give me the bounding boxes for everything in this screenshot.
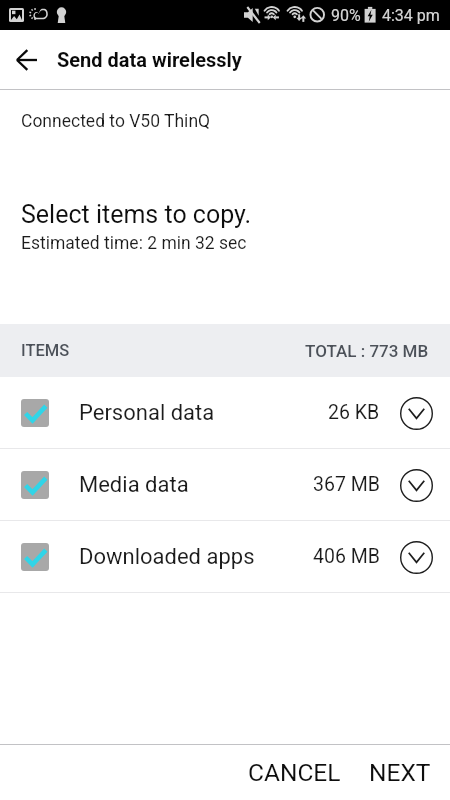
staticText: Personal data — [79, 400, 215, 426]
staticText: ITEMS — [21, 341, 70, 360]
staticText: Media data — [79, 472, 189, 498]
button[interactable]: Expand Personal data — [399, 396, 433, 430]
staticText: 90% — [331, 6, 361, 25]
staticText: Estimated time: 2 min 32 sec — [21, 233, 247, 254]
staticText: Select items to copy. — [21, 200, 252, 229]
button[interactable]: Expand Downloaded apps — [399, 540, 433, 574]
staticText: NEXT — [369, 758, 431, 787]
button[interactable]: CANCEL — [238, 750, 351, 795]
staticText: 26 KB — [328, 401, 380, 424]
staticText: 367 MB — [313, 473, 380, 496]
other: Select Downloaded apps — [21, 543, 49, 571]
other: Select Media data — [21, 471, 49, 499]
button[interactable]: Select Media data — [0, 449, 450, 520]
staticText: Send data wirelessly — [57, 48, 242, 71]
button[interactable]: NEXT — [359, 750, 441, 795]
other: Select Personal data — [21, 399, 49, 427]
staticText: Downloaded apps — [79, 544, 255, 570]
staticText: CANCEL — [248, 758, 341, 787]
button[interactable]: Select Downloaded apps — [0, 521, 450, 592]
button[interactable]: Expand Media data — [399, 468, 433, 502]
staticText: 4:34 pm — [382, 6, 440, 25]
staticText: 406 MB — [313, 545, 380, 568]
staticText: TOTAL : 773 MB — [305, 341, 429, 361]
button[interactable]: Select Personal data — [0, 377, 450, 448]
staticText: Connected to V50 ThinQ — [21, 111, 211, 132]
button[interactable]: Back — [0, 30, 46, 89]
